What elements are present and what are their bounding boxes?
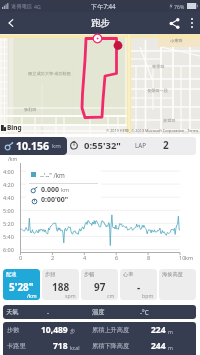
button[interactable]: 步頻 (42, 269, 79, 300)
button[interactable]: 配速 (3, 269, 40, 300)
staticText: 188 (52, 280, 70, 294)
staticText: 國立成功大學·成功校區 (28, 71, 71, 77)
staticText: 步幅 (84, 271, 95, 278)
button[interactable]: 10.156 (0, 137, 67, 155)
button[interactable]: 海拔高度 (159, 269, 196, 300)
staticText: 步頻 (45, 271, 56, 278)
staticText: 累積上升高度 (92, 326, 130, 334)
staticText: 4 (83, 254, 87, 261)
staticText: 步數 (7, 326, 20, 334)
staticText: 0:55'32" (84, 139, 121, 152)
staticText: 5'28" (9, 280, 34, 294)
staticText: cm (107, 292, 115, 299)
staticText: -°C (140, 308, 149, 316)
staticText: m (168, 328, 173, 335)
staticText: kcal (70, 344, 80, 351)
staticText: /km (27, 292, 37, 299)
button[interactable]: Share (164, 12, 184, 34)
staticText: 8 (147, 254, 151, 261)
staticText: 小東路 (170, 38, 183, 43)
staticText: - (47, 308, 49, 316)
staticText: 76% (174, 3, 185, 10)
staticText: 天氣 (6, 308, 19, 316)
staticText: m (168, 344, 173, 351)
staticText: 海拔高度 (162, 271, 183, 278)
staticText: 跑步 (91, 17, 110, 29)
button[interactable]: Back (0, 12, 22, 34)
staticText: 卡路里 (7, 342, 26, 350)
staticText: 5:00 (3, 207, 14, 214)
staticText: km (185, 254, 194, 261)
staticText: 4G (34, 3, 41, 10)
staticText: 心率 (123, 271, 134, 278)
staticText: Bing (7, 123, 22, 132)
staticText: 5:40 (3, 233, 14, 240)
staticText: 10 (179, 254, 186, 261)
staticText: 東豐路 (163, 118, 176, 123)
staticText: 2 (51, 254, 55, 261)
staticText: 4:20 (3, 181, 14, 188)
staticText: 6:00 (3, 246, 14, 253)
staticText: 東寧路 (152, 64, 165, 69)
staticText: 步 (70, 328, 76, 335)
staticText: 5:20 (3, 220, 14, 227)
staticText: 244 (151, 340, 166, 352)
staticText: LAP (135, 141, 146, 149)
staticText: 0.000 (41, 185, 59, 195)
staticText: - (137, 280, 141, 294)
staticText: 長榮路一段 (147, 88, 168, 93)
staticText: spm (65, 292, 76, 299)
staticText: km (61, 186, 70, 193)
staticText: 6 (115, 254, 119, 261)
staticText: 濕度 (92, 308, 105, 316)
staticText: 0:00'00" (41, 195, 69, 205)
staticText: 0 (19, 254, 23, 261)
staticText: /km (8, 156, 18, 163)
button[interactable]: 步幅 (81, 269, 118, 300)
staticText: 遠傳電信 (11, 3, 32, 10)
staticText: 4:00 (3, 168, 14, 175)
staticText: 224 (151, 324, 166, 336)
staticText: --'--" /km (40, 171, 65, 179)
staticText: 配速 (6, 271, 17, 278)
staticText: bpm (142, 292, 154, 299)
staticText: 10,489 (41, 324, 68, 336)
staticText: km (52, 142, 61, 150)
staticText: © 2019 HERE, © 2019 Microsoft Corporatio… (106, 128, 199, 133)
staticText: 勝利路 (24, 107, 37, 112)
staticText: 97 (94, 280, 106, 294)
button[interactable]: More options (184, 12, 200, 34)
staticText: 718 (53, 340, 68, 352)
staticText: 4:40 (3, 194, 14, 201)
staticText: 10.156 (16, 139, 49, 153)
button[interactable]: 心率 (120, 269, 157, 300)
staticText: 2 (163, 138, 169, 152)
button[interactable]: 天氣 (3, 305, 196, 319)
staticText: 累積下降高度 (92, 342, 130, 350)
staticText: 下午7:44 (91, 2, 116, 10)
